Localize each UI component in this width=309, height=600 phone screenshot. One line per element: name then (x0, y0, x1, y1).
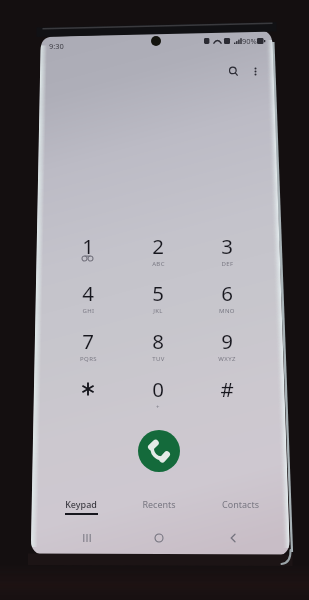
staticText: GHI (82, 307, 95, 315)
button[interactable]: Recent apps (73, 524, 101, 552)
button[interactable]: 5 (132, 279, 184, 315)
button[interactable]: 6 (201, 279, 253, 315)
button[interactable]: 1 (62, 232, 114, 260)
button[interactable]: # (201, 375, 253, 403)
staticText: Contacts (222, 498, 259, 510)
staticText: DEF (221, 260, 234, 268)
staticText: 90% (242, 36, 257, 46)
button[interactable]: 4 (62, 279, 114, 315)
staticText: JKL (153, 307, 163, 315)
staticText: 1 (82, 232, 94, 260)
button[interactable]: 8 (132, 327, 184, 363)
staticText: 5 (152, 279, 164, 307)
button[interactable]: 7 (62, 327, 114, 363)
staticText: # (220, 375, 234, 403)
button[interactable]: Call (138, 430, 180, 472)
staticText: Keypad (65, 498, 97, 510)
staticText: 8 (152, 327, 164, 355)
staticText: 4 (82, 279, 94, 307)
button[interactable]: 3 (201, 232, 253, 268)
staticText: 7 (82, 327, 94, 355)
staticText: ABC (152, 260, 165, 268)
staticText: 9:30 (49, 41, 64, 51)
staticText: 2 (152, 232, 164, 260)
button[interactable]: Search (221, 59, 245, 83)
button[interactable]: star (72, 373, 104, 405)
staticText: 9 (221, 327, 233, 355)
button[interactable]: 9 (201, 327, 253, 363)
staticText: 6 (221, 279, 233, 307)
staticText: 0 (152, 375, 164, 403)
button[interactable]: 2 (132, 232, 184, 268)
staticText: MNO (219, 307, 235, 315)
staticText: TUV (152, 355, 165, 363)
staticText: WXYZ (218, 355, 236, 363)
staticText: 3 (221, 232, 233, 260)
button[interactable]: Keypad (51, 496, 111, 517)
button[interactable]: Recents (129, 496, 189, 512)
staticText: + (156, 403, 160, 411)
button[interactable]: Back (219, 524, 247, 552)
button[interactable]: Home (145, 524, 173, 552)
staticText: Recents (142, 498, 176, 510)
staticText: PQRS (80, 355, 97, 363)
button[interactable]: 0 (132, 375, 184, 411)
button[interactable]: More options (243, 59, 267, 83)
button[interactable]: Contacts (210, 496, 270, 512)
